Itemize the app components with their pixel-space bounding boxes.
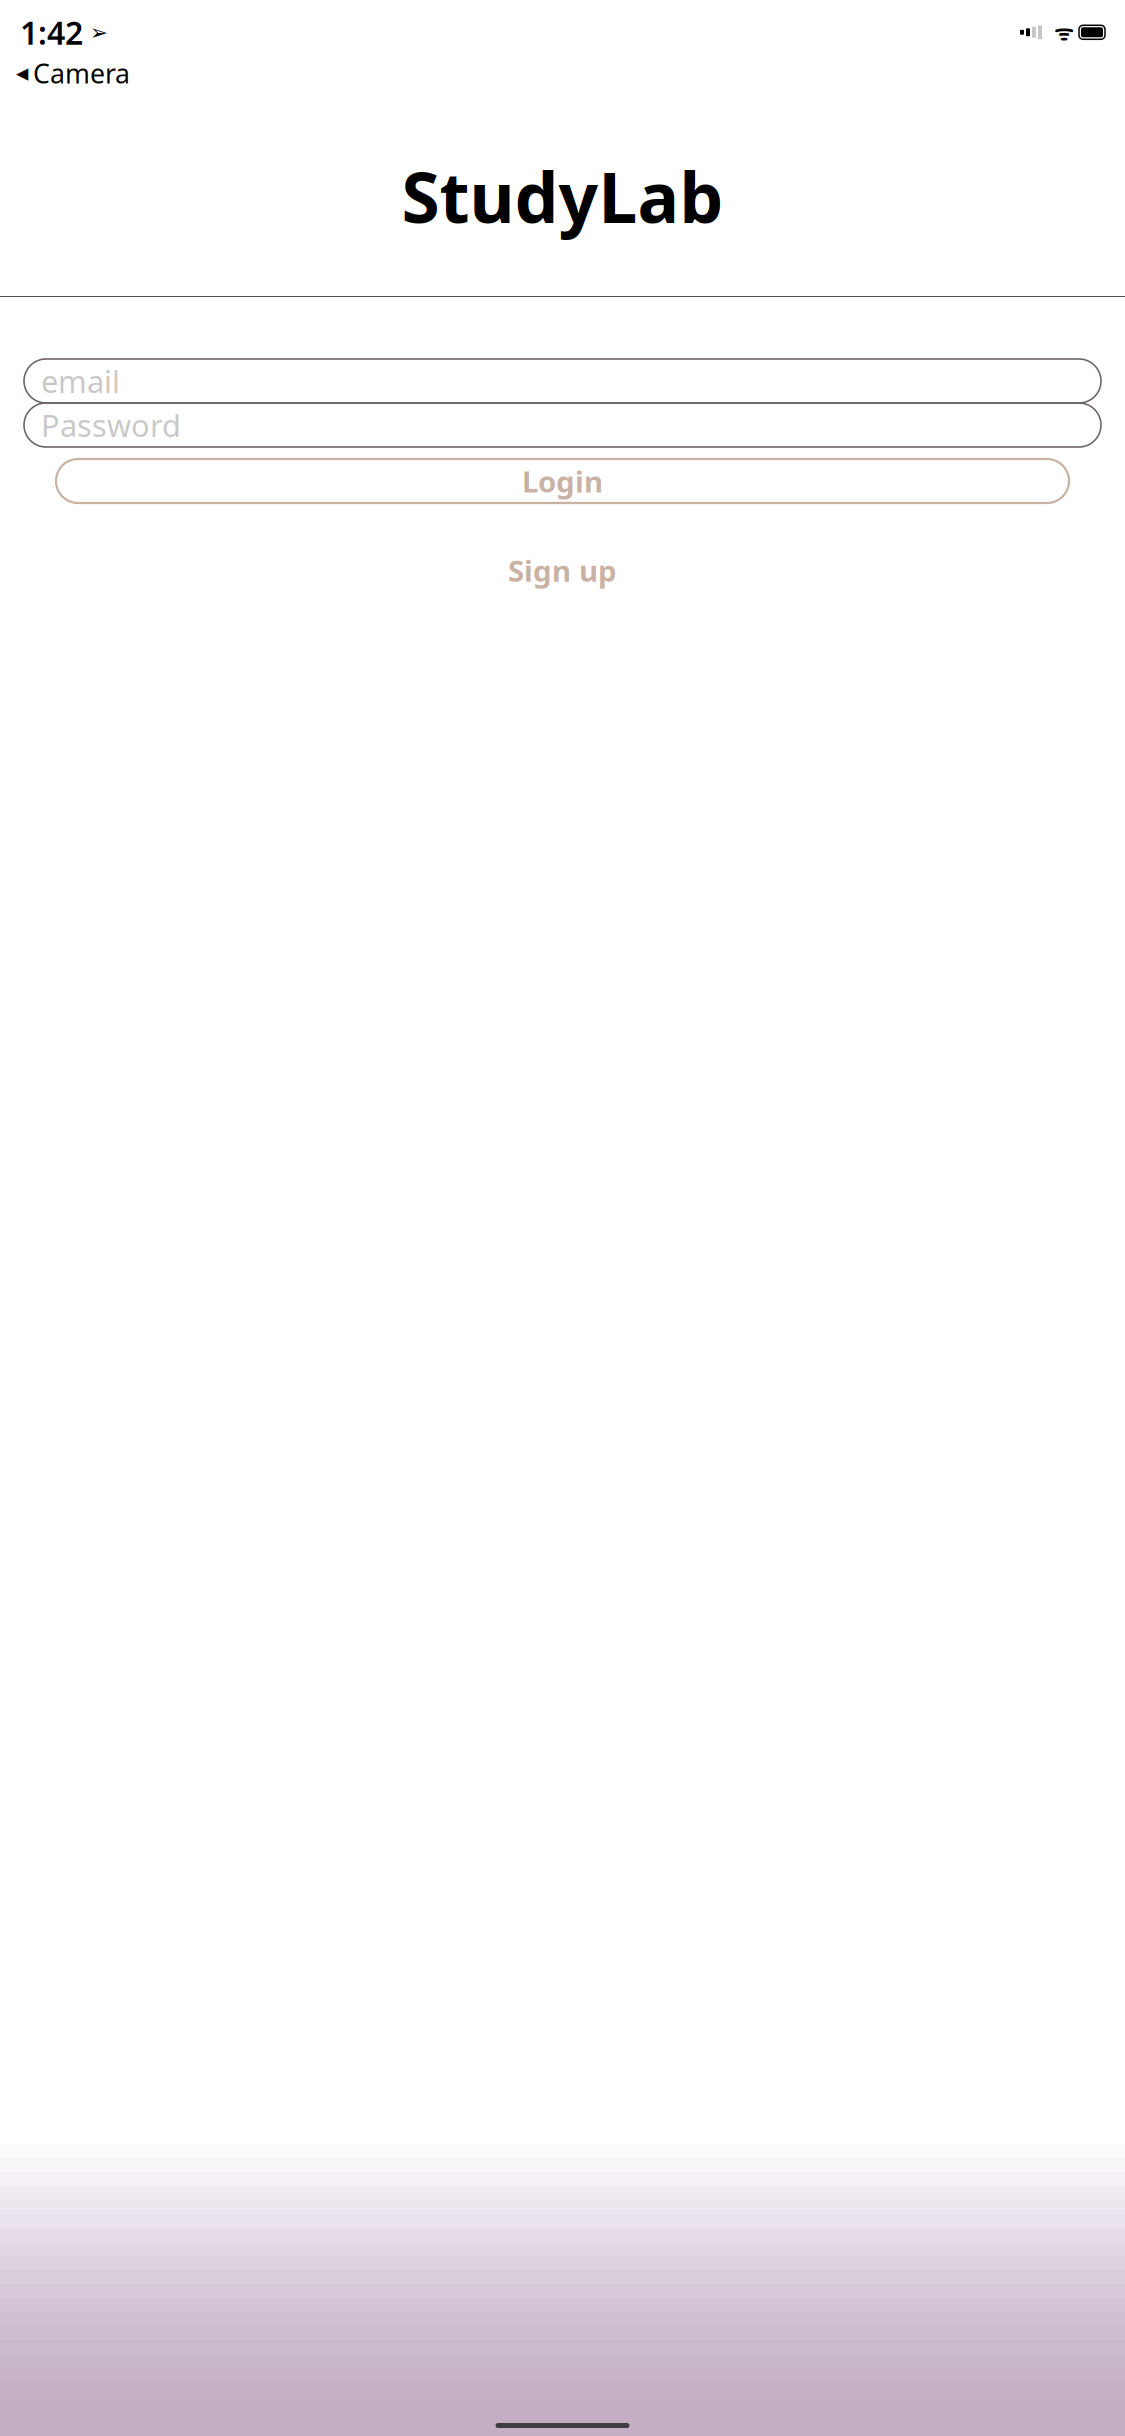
button[interactable]: Password <box>24 403 1101 447</box>
staticText: ᯤ <box>1042 18 1073 46</box>
button[interactable]: Login <box>24 459 1101 503</box>
staticText: ◀ <box>16 64 28 82</box>
staticText: Sign up <box>508 551 617 590</box>
button[interactable]: Sign up <box>24 551 1101 590</box>
staticText: email <box>41 361 120 401</box>
button[interactable]: Back to Camera <box>0 55 1125 91</box>
staticText: Camera <box>33 55 130 91</box>
staticText: 1:42 <box>20 11 83 53</box>
staticText: ➢ <box>83 20 108 44</box>
staticText: Login <box>522 461 603 500</box>
staticText: Password <box>41 405 181 445</box>
staticText: StudyLab <box>401 150 723 242</box>
button[interactable]: email <box>24 359 1101 403</box>
